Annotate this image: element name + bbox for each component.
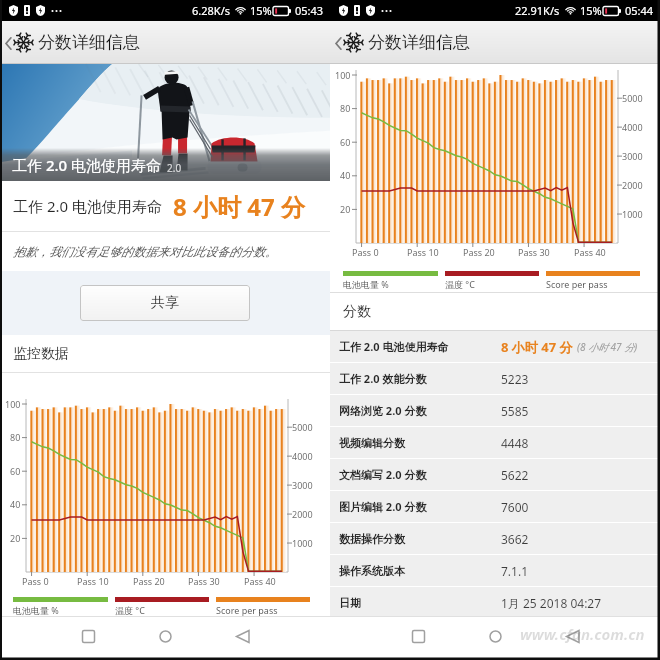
button[interactable]: Recents (70, 616, 106, 660)
staticText: 80 (10, 431, 21, 443)
button[interactable]: 网络浏览 2.0 分数 (330, 395, 660, 426)
staticText: 7.1.1 (501, 563, 529, 579)
staticText: (8 小时 47 分) (577, 340, 638, 354)
staticText: 40 (340, 169, 351, 181)
button[interactable]: 共享 (80, 285, 250, 321)
button[interactable]: 操作系统版本 (330, 555, 660, 586)
staticText: 工作 2.0 效能分数 (339, 371, 501, 386)
button[interactable]: 工作 2.0 电池使用寿命 (330, 331, 660, 362)
staticText: 100 (335, 69, 351, 81)
staticText: 文档编写 2.0 分数 (339, 467, 501, 482)
staticText: 4000 (622, 121, 643, 133)
button[interactable]: Back (554, 616, 590, 660)
staticText: Pass 10 (77, 575, 109, 587)
staticText: 5000 (622, 92, 643, 104)
staticText: Pass 30 (188, 575, 220, 587)
staticText: 2000 (292, 508, 313, 520)
staticText: 4000 (292, 450, 313, 462)
staticText: 15% (580, 3, 602, 18)
staticText: 5000 (292, 421, 313, 433)
staticText: Pass 10 (407, 246, 439, 258)
staticText: 数据操作分数 (339, 532, 501, 546)
staticText: 电池电量 % (13, 604, 59, 616)
staticText: 6.28K/s (192, 3, 230, 18)
staticText: 图片编辑 2.0 分数 (339, 499, 501, 514)
staticText: 抱歉，我们没有足够的数据来对比此设备的分数。 (13, 244, 277, 259)
staticText: 监控数据 (13, 345, 69, 363)
staticText: Score per pass (216, 604, 278, 616)
staticText: Pass 20 (133, 575, 165, 587)
staticText: 3000 (622, 150, 643, 162)
staticText: 2000 (622, 179, 643, 191)
staticText: 7600 (501, 499, 529, 515)
button[interactable]: Back (333, 26, 344, 60)
staticText: 分数详细信息 (38, 32, 140, 53)
staticText: 工作 2.0 电池使用寿命 (339, 339, 501, 354)
staticText: 分数 (343, 303, 371, 321)
staticText: 5585 (501, 403, 529, 419)
staticText: 视频编辑分数 (339, 436, 501, 450)
staticText: 操作系统版本 (339, 564, 501, 578)
staticText: Pass 40 (244, 575, 276, 587)
staticText: 网络浏览 2.0 分数 (339, 403, 501, 418)
staticText: Score per pass (546, 278, 608, 290)
button[interactable]: 数据操作分数 (330, 523, 660, 554)
button[interactable]: Back (224, 616, 260, 660)
staticText: Pass 0 (22, 575, 49, 587)
staticText: 工作 2.0 电池使用寿命 (12, 155, 162, 175)
staticText: 日期 (339, 596, 501, 610)
staticText: 8 小时 47 分 (173, 190, 305, 223)
button[interactable]: Home (477, 616, 513, 660)
button[interactable]: Recents (400, 616, 436, 660)
staticText: 1月 25 2018 04:27 (501, 595, 602, 611)
staticText: 5223 (501, 371, 529, 387)
staticText: 05:44 (625, 3, 654, 18)
staticText: Pass 40 (574, 246, 606, 258)
staticText: 3662 (501, 531, 529, 547)
staticText: Pass 0 (352, 246, 379, 258)
staticText: 工作 2.0 电池使用寿命 (13, 196, 162, 216)
staticText: 20 (340, 203, 351, 215)
staticText: 温度 °C (445, 278, 475, 290)
staticText: 15% (250, 3, 272, 18)
staticText: Pass 20 (463, 246, 495, 258)
staticText: 电池电量 % (343, 278, 389, 290)
button[interactable]: 工作 2.0 效能分数 (330, 363, 660, 394)
staticText: 共享 (151, 294, 179, 312)
button[interactable]: 图片编辑 2.0 分数 (330, 491, 660, 522)
button[interactable]: 视频编辑分数 (330, 427, 660, 458)
staticText: 80 (340, 102, 351, 114)
staticText: 1000 (292, 537, 313, 549)
button[interactable]: 日期 (330, 587, 660, 618)
staticText: 22.91K/s (515, 3, 560, 18)
staticText: 3000 (292, 479, 313, 491)
staticText: 60 (340, 136, 351, 148)
staticText: 05:43 (295, 3, 324, 18)
staticText: Pass 30 (518, 246, 550, 258)
staticText: 5622 (501, 467, 529, 483)
staticText: 1000 (622, 208, 643, 220)
staticText: 4448 (501, 435, 529, 451)
staticText: 分数详细信息 (368, 32, 470, 53)
button[interactable]: 文档编写 2.0 分数 (330, 459, 660, 490)
button[interactable]: Home (147, 616, 183, 660)
staticText: www.cfan.com.cn (520, 624, 645, 644)
staticText: 温度 °C (115, 604, 145, 616)
staticText: 20 (10, 532, 21, 544)
staticText: 2.0 (167, 161, 182, 175)
staticText: 100 (5, 398, 21, 410)
staticText: 8 小时 47 分 (501, 338, 573, 356)
staticText: 60 (10, 465, 21, 477)
staticText: 40 (10, 498, 21, 510)
button[interactable]: Back (3, 26, 14, 60)
